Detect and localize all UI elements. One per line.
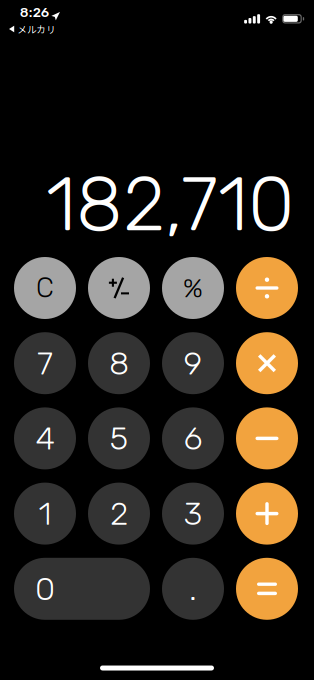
button[interactable]: C bbox=[14, 257, 76, 319]
staticText: 8 bbox=[109, 344, 129, 382]
button[interactable]: 7 bbox=[14, 332, 76, 394]
staticText: 0 bbox=[35, 569, 55, 608]
staticText: 5 bbox=[109, 419, 128, 458]
button[interactable]: 3 bbox=[162, 483, 224, 545]
button[interactable]: Plus bbox=[236, 483, 298, 545]
button[interactable]: 4 bbox=[14, 407, 76, 469]
button[interactable]: Plus minus bbox=[88, 257, 150, 319]
staticText: . bbox=[189, 569, 197, 608]
button[interactable]: Minus bbox=[236, 407, 298, 469]
button[interactable]: 8 bbox=[88, 332, 150, 394]
staticText: 8:26 bbox=[20, 5, 49, 20]
staticText: 1 bbox=[38, 494, 51, 533]
staticText: C bbox=[36, 272, 54, 304]
button[interactable]: Multiply bbox=[236, 332, 298, 394]
button[interactable]: . bbox=[162, 558, 224, 620]
staticText: 2 bbox=[110, 494, 128, 533]
button[interactable]: 0 bbox=[14, 558, 150, 620]
button[interactable]: 6 bbox=[162, 407, 224, 469]
button[interactable]: Divide bbox=[236, 257, 298, 319]
button[interactable]: 1 bbox=[14, 483, 76, 545]
button[interactable]: 2 bbox=[88, 483, 150, 545]
button[interactable]: Equals bbox=[236, 558, 298, 620]
staticText: 6 bbox=[183, 419, 202, 458]
staticText: % bbox=[183, 272, 203, 304]
staticText: 9 bbox=[183, 344, 202, 382]
staticText: 4 bbox=[35, 419, 54, 458]
staticText: 182,710 bbox=[46, 160, 294, 249]
button[interactable]: % bbox=[162, 257, 224, 319]
staticText: 3 bbox=[183, 494, 202, 533]
button[interactable]: 5 bbox=[88, 407, 150, 469]
staticText: メルカリ bbox=[17, 22, 56, 36]
staticText: 7 bbox=[37, 344, 53, 382]
button[interactable]: 9 bbox=[162, 332, 224, 394]
